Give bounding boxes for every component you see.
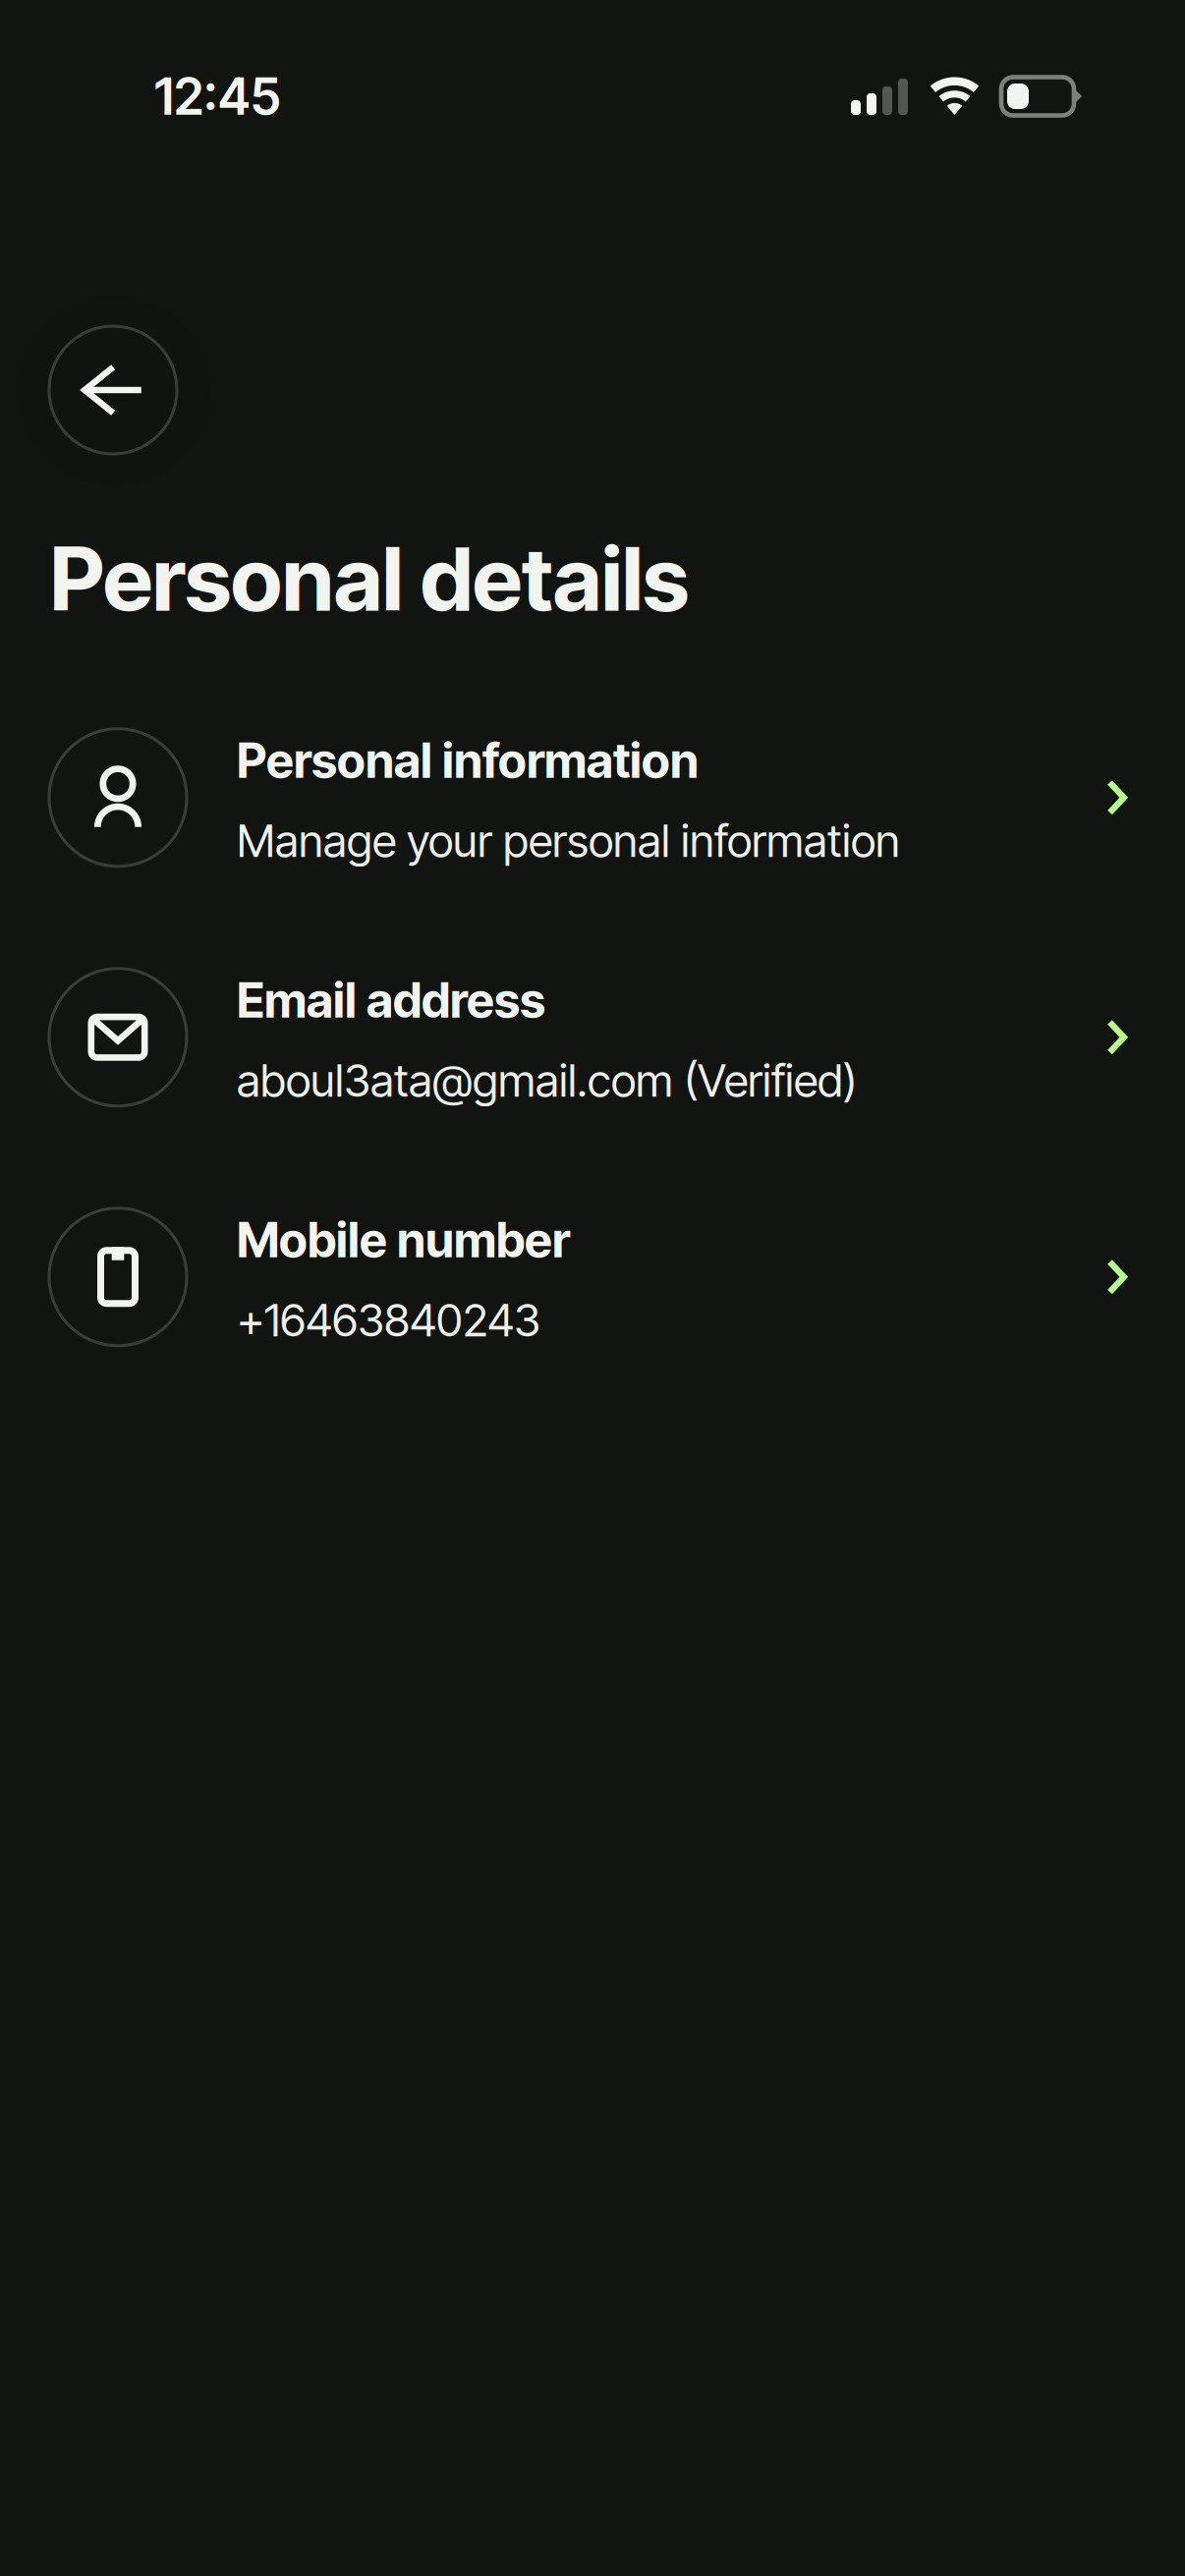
staticText: aboul3ata@gmail.com (Verified) [237, 1053, 857, 1107]
staticText: Manage your personal information [237, 813, 900, 868]
staticText: Personal details [50, 526, 689, 632]
button[interactable]: Personal information [0, 678, 1185, 917]
button[interactable]: Email address [0, 917, 1185, 1157]
staticText: Mobile number [237, 1211, 570, 1269]
staticText: 12:45 [154, 66, 281, 127]
button[interactable]: Back [17, 294, 209, 486]
staticText: Personal information [237, 731, 699, 790]
button[interactable]: Mobile number [0, 1157, 1185, 1397]
staticText: Email address [237, 971, 545, 1029]
staticText: +16463840243 [237, 1293, 540, 1347]
